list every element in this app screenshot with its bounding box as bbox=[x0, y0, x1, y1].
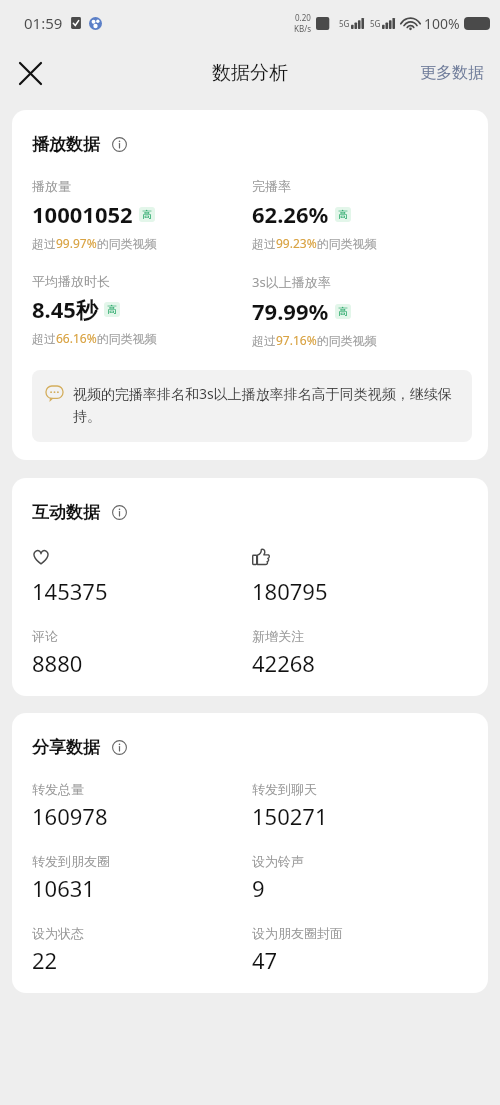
button[interactable]: Info bbox=[107, 500, 131, 524]
staticText: 100% bbox=[424, 14, 460, 33]
staticText: 更多数据 bbox=[420, 63, 484, 83]
staticText: 评论 bbox=[32, 628, 58, 644]
staticText: 设为朋友圈封面 bbox=[252, 925, 343, 941]
staticText: 超过99.97%的同类视频 bbox=[32, 235, 157, 251]
staticText: 互动数据 bbox=[32, 502, 100, 523]
staticText: 42268 bbox=[252, 648, 315, 678]
button[interactable]: Close bbox=[8, 51, 52, 95]
staticText: 新增关注 bbox=[252, 628, 304, 644]
staticText: 超过97.16%的同类视频 bbox=[252, 332, 377, 348]
button[interactable]: 更多数据 bbox=[416, 55, 488, 91]
staticText: 高 bbox=[338, 305, 348, 318]
other: Thumbs up bbox=[252, 548, 274, 570]
staticText: 8.45秒 bbox=[32, 294, 98, 324]
staticText: 平均播放时长 bbox=[32, 273, 110, 289]
button[interactable]: Info bbox=[107, 132, 131, 156]
staticText: 8880 bbox=[32, 648, 83, 678]
staticText: 转发到聊天 bbox=[252, 781, 317, 797]
staticText: 10001052 bbox=[32, 199, 133, 229]
staticText: KB/s bbox=[294, 23, 311, 34]
staticText: 9 bbox=[252, 873, 265, 903]
staticText: 10631 bbox=[32, 873, 95, 903]
staticText: 79.99% bbox=[252, 296, 329, 326]
staticText: 转发到朋友圈 bbox=[32, 853, 110, 869]
staticText: 高 bbox=[338, 208, 348, 221]
staticText: 转发总量 bbox=[32, 781, 84, 797]
staticText: 160978 bbox=[32, 801, 108, 831]
staticText: 播放量 bbox=[32, 178, 71, 194]
staticText: 超过66.16%的同类视频 bbox=[32, 330, 157, 346]
other: Likes bbox=[32, 548, 54, 570]
staticText: 视频的完播率排名和3s以上播放率排名高于同类视频，继续保持。 bbox=[73, 384, 458, 426]
staticText: 超过99.23%的同类视频 bbox=[252, 235, 377, 251]
button[interactable]: Info bbox=[107, 735, 131, 759]
staticText: 47 bbox=[252, 945, 278, 975]
staticText: 播放数据 bbox=[32, 134, 100, 155]
staticText: 0.20 bbox=[295, 12, 311, 23]
staticText: 分享数据 bbox=[32, 737, 100, 758]
staticText: 数据分析 bbox=[212, 61, 288, 85]
staticText: 22 bbox=[32, 945, 58, 975]
staticText: 62.26% bbox=[252, 199, 329, 229]
staticText: 3s以上播放率 bbox=[252, 273, 331, 291]
staticText: 5G bbox=[339, 18, 350, 29]
staticText: 5G bbox=[370, 18, 381, 29]
staticText: 145375 bbox=[32, 576, 108, 606]
staticText: 高 bbox=[142, 208, 152, 221]
staticText: 设为铃声 bbox=[252, 853, 304, 869]
staticText: 高 bbox=[107, 303, 117, 316]
staticText: 完播率 bbox=[252, 178, 291, 194]
staticText: 01:59 bbox=[24, 13, 63, 33]
staticText: 设为状态 bbox=[32, 925, 84, 941]
staticText: 180795 bbox=[252, 576, 328, 606]
staticText: 150271 bbox=[252, 801, 328, 831]
